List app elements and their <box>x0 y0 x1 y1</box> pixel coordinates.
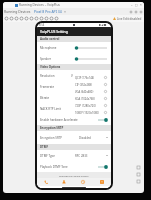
staticText: XGA (1024x768) <box>75 97 104 101</box>
button[interactable]: Speaker <box>37 53 111 64</box>
button[interactable]: DTMF Type <box>37 150 111 161</box>
staticText: VoipPLUS Setting <box>40 29 68 34</box>
button[interactable]: Playback DTMF Tone <box>37 161 111 172</box>
staticText: Encryption SRTP <box>40 136 63 140</box>
staticText: DTMF Type <box>40 154 55 158</box>
staticText: VGA (640x480) <box>71 74 91 78</box>
button[interactable]: Bitrate <box>37 92 111 103</box>
staticText: CIF (352x288) <box>75 83 104 87</box>
staticText: Bitrate <box>40 96 50 100</box>
button[interactable]: XGA (1024x768) <box>73 95 109 102</box>
staticText: Enable hardware Accelerate <box>40 118 98 122</box>
staticText: Disabled <box>79 136 91 140</box>
button[interactable]: tool6 <box>34 16 39 21</box>
button[interactable]: Running Devices <box>4 9 31 14</box>
staticText: Running Devices – VoipPlus <box>19 3 60 7</box>
button[interactable]: action1 <box>133 9 138 14</box>
staticText: 1080P (1920x1080) <box>75 111 104 115</box>
button[interactable]: Encryption SRTP <box>37 131 111 144</box>
button[interactable]: tool7 <box>39 16 44 21</box>
staticText: NACK RTP Limit <box>40 107 62 111</box>
button[interactable]: Contacts <box>55 178 73 186</box>
button[interactable]: tool5 <box>29 16 34 21</box>
staticText: RFC 2833 <box>75 154 88 158</box>
button[interactable]: Settings <box>92 178 111 186</box>
staticText: Playback DTMF Tone <box>40 165 98 169</box>
button[interactable]: tool9 <box>49 16 54 21</box>
button[interactable]: tool1 <box>9 16 14 21</box>
button[interactable]: CIF (352x288) <box>73 81 109 88</box>
staticText: Encryption SRTP <box>40 126 64 130</box>
button[interactable]: History <box>73 178 92 186</box>
button[interactable]: rail2 <box>135 178 142 185</box>
button[interactable]: tool10 <box>54 16 59 21</box>
button[interactable]: rail0 <box>135 164 142 171</box>
staticText: Selected call online screen <box>59 174 89 177</box>
button[interactable]: QCIF (176x144) <box>73 74 109 81</box>
button[interactable]: Microphone <box>37 42 111 53</box>
button[interactable]: 1080P (1920x1080) <box>73 109 109 116</box>
staticText: 512 kbps <box>73 96 86 100</box>
staticText: – □ × <box>131 3 142 7</box>
staticText: 720P (1280x720) <box>75 104 104 108</box>
button[interactable]: tool0 <box>4 16 9 21</box>
staticText: 20 fps <box>77 85 86 89</box>
staticText: × <box>64 9 66 14</box>
staticText: Microphone <box>40 46 57 50</box>
button[interactable]: VGA (640x480) <box>73 88 109 95</box>
staticText: QCIF (176x144) <box>75 76 104 80</box>
staticText: Speaker <box>40 57 51 61</box>
staticText: DTMF <box>40 145 49 149</box>
button[interactable]: Enable hardware Accelerate <box>37 114 111 125</box>
button[interactable]: action0 <box>128 9 133 14</box>
staticText: Audio control <box>40 37 60 41</box>
button[interactable]: VoipPLUS Setting <box>37 27 111 36</box>
staticText: VGA (640x480) <box>75 90 104 94</box>
staticText: Live Edit disabled <box>117 17 142 21</box>
staticText: Framerate <box>40 85 55 89</box>
staticText: 8:54 <box>39 23 45 27</box>
button[interactable]: tool2 <box>14 16 19 21</box>
button[interactable]: Pixel 8 Pro API 34 <box>34 9 62 14</box>
button[interactable]: tool3 <box>19 16 24 21</box>
button[interactable]: tool4 <box>24 16 29 21</box>
button[interactable]: Call <box>37 178 55 186</box>
staticText: Video Options <box>40 65 61 69</box>
button[interactable]: rail1 <box>135 171 142 178</box>
button[interactable]: Framerate <box>37 81 111 92</box>
button[interactable]: Resolution <box>37 70 111 81</box>
button[interactable]: NACK RTP Limit <box>37 103 111 114</box>
button[interactable]: tool8 <box>44 16 49 21</box>
button[interactable]: action2 <box>138 9 143 14</box>
button[interactable]: 720P (1280x720) <box>73 102 109 109</box>
staticText: Resolution <box>40 74 55 78</box>
